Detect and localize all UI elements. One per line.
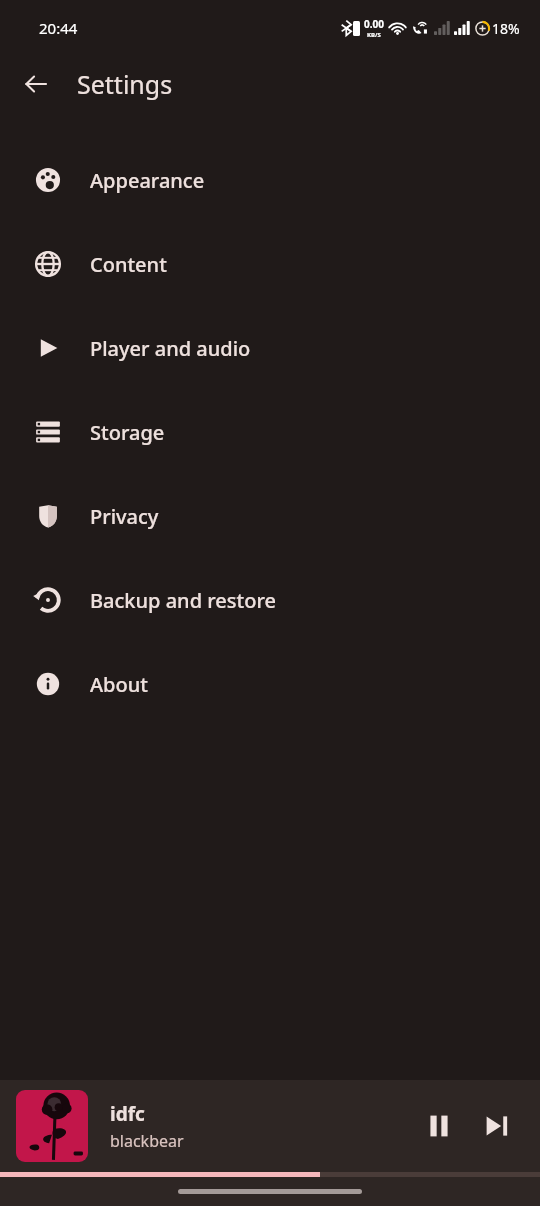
staticText: Appearance xyxy=(90,167,205,194)
staticText: 20:44 xyxy=(39,18,78,38)
button[interactable]: About xyxy=(0,642,540,726)
staticText: Content xyxy=(90,251,167,278)
staticText: Settings xyxy=(77,67,173,101)
staticText: About xyxy=(90,671,148,698)
staticText: 18% xyxy=(492,19,520,38)
staticText: Player and audio xyxy=(90,335,251,362)
button[interactable]: Backup and restore xyxy=(0,558,540,642)
staticText: KB/S xyxy=(367,31,381,39)
button[interactable]: Player and audio xyxy=(0,306,540,390)
staticText: Privacy xyxy=(90,503,159,530)
button[interactable]: idfc xyxy=(0,1080,540,1172)
button[interactable]: Storage xyxy=(0,390,540,474)
staticText: Backup and restore xyxy=(90,587,276,614)
staticText: idfc xyxy=(110,1101,145,1127)
button[interactable]: Appearance xyxy=(0,138,540,222)
staticText: Storage xyxy=(90,419,165,446)
button[interactable]: Next track xyxy=(468,1097,526,1155)
button[interactable]: Privacy xyxy=(0,474,540,558)
staticText: blackbear xyxy=(110,1130,184,1152)
button[interactable]: Content xyxy=(0,222,540,306)
button[interactable]: Pause xyxy=(410,1097,468,1155)
button[interactable]: Back xyxy=(12,60,60,108)
staticText: 0.00 xyxy=(364,17,384,31)
